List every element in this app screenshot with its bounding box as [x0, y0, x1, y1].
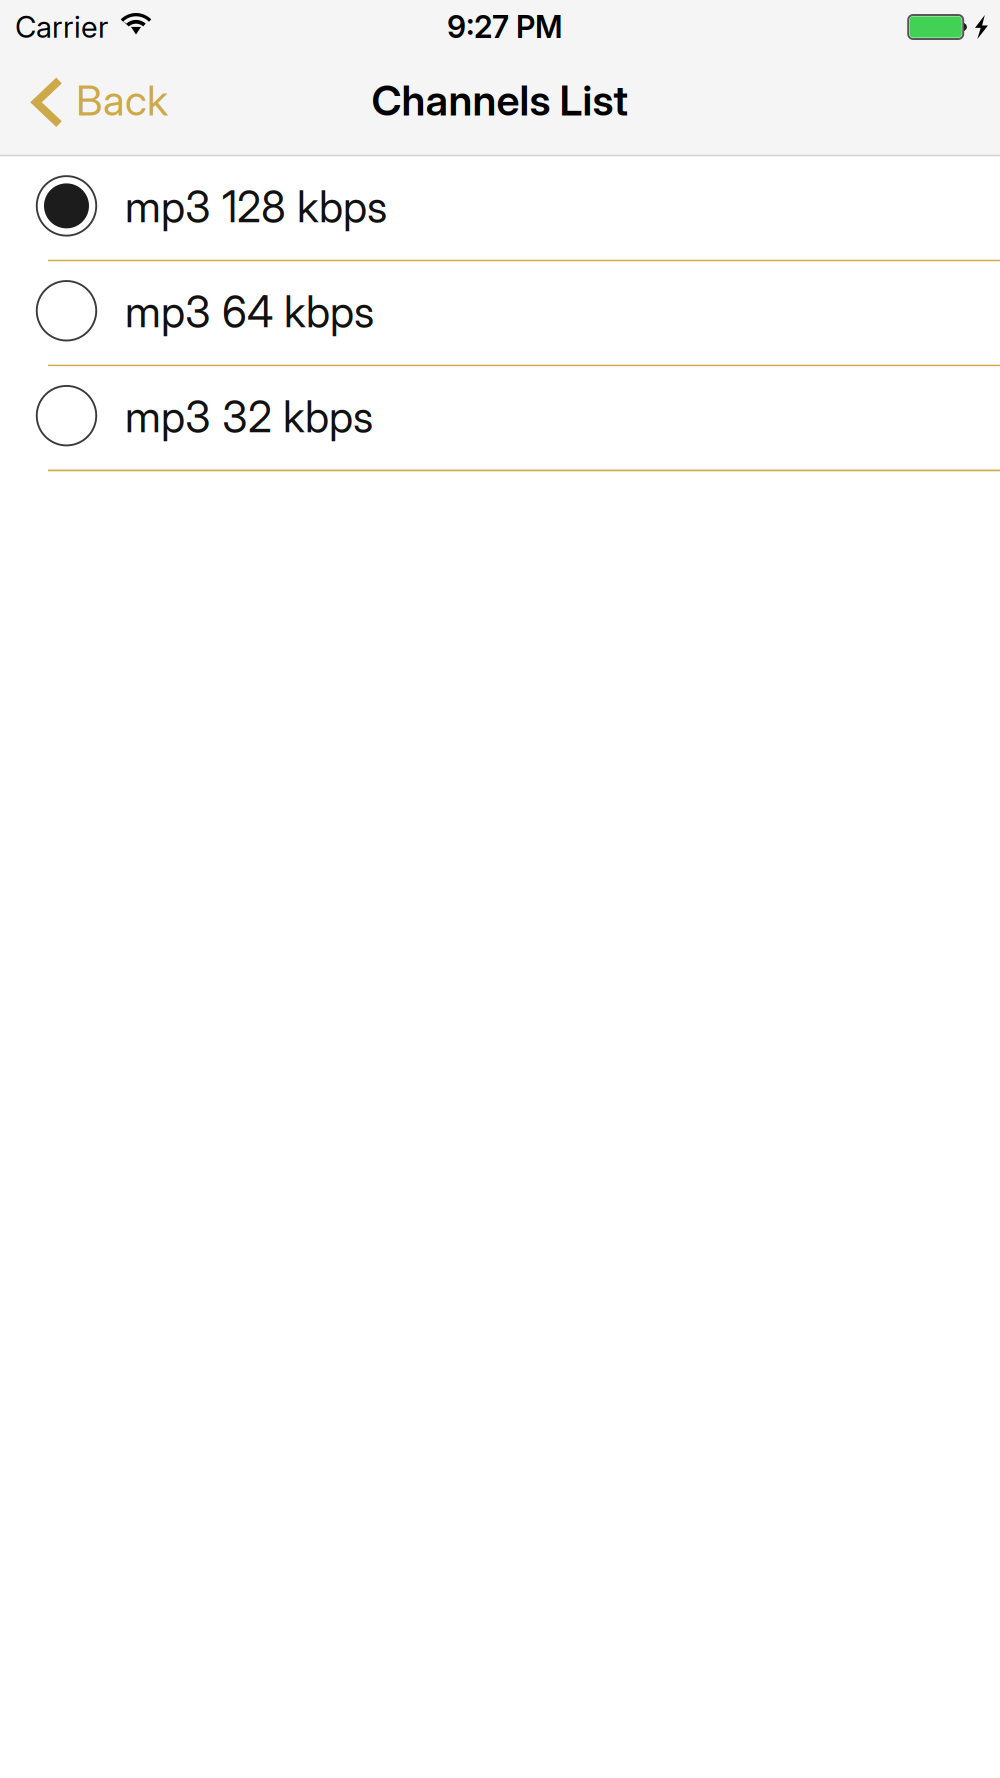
- staticText: Channels List: [371, 75, 628, 125]
- staticText: Carrier: [15, 9, 108, 45]
- staticText: 9:27 PM: [447, 8, 563, 45]
- staticText: mp3 32 kbps: [125, 391, 373, 442]
- button[interactable]: Back: [0, 54, 182, 155]
- staticText: mp3 64 kbps: [125, 286, 374, 337]
- button[interactable]: mp3 64 kbps: [0, 261, 1000, 366]
- staticText: Back: [76, 75, 168, 125]
- button[interactable]: mp3 32 kbps: [0, 366, 1000, 471]
- button[interactable]: mp3 128 kbps: [0, 157, 1000, 261]
- staticText: mp3 128 kbps: [125, 181, 387, 233]
